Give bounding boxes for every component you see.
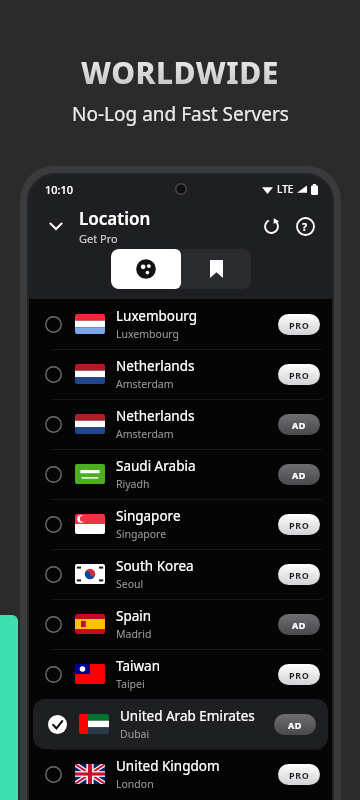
staticText: Get Pro xyxy=(79,231,118,246)
button[interactable]: PRO xyxy=(278,764,320,785)
button[interactable]: AD xyxy=(274,714,316,735)
staticText: Taipei xyxy=(116,677,145,691)
staticText: Singapore xyxy=(116,527,167,541)
button[interactable]: PRO xyxy=(278,364,320,385)
staticText: AD xyxy=(292,619,307,631)
staticText: WORLDWIDE xyxy=(81,52,279,93)
staticText: Taiwan xyxy=(116,657,161,675)
button[interactable]: AD xyxy=(278,464,320,485)
staticText: AD xyxy=(292,469,307,481)
staticText: PRO xyxy=(289,769,310,781)
button[interactable]: Refresh xyxy=(254,209,288,243)
staticText: Location xyxy=(79,207,151,230)
staticText: LTE xyxy=(277,182,294,196)
button[interactable]: PRO xyxy=(278,314,320,335)
button[interactable]: Saudi Arabia xyxy=(29,449,332,499)
button[interactable]: Spain xyxy=(29,599,332,649)
staticText: London xyxy=(116,777,154,791)
staticText: Dubai xyxy=(120,727,150,741)
button[interactable]: PRO xyxy=(278,664,320,685)
staticText: PRO xyxy=(289,319,310,331)
staticText: Spain xyxy=(116,607,152,625)
staticText: PRO xyxy=(289,669,310,681)
button[interactable]: All servers xyxy=(111,249,181,289)
button[interactable]: United Kingdom xyxy=(29,749,332,799)
staticText: PRO xyxy=(289,369,310,381)
staticText: AD xyxy=(292,419,307,431)
button[interactable]: Favourites xyxy=(181,249,251,289)
button[interactable]: PRO xyxy=(278,514,320,535)
button[interactable]: Luxembourg xyxy=(29,299,332,349)
button[interactable]: Netherlands xyxy=(29,399,332,449)
staticText: United Arab Emirates xyxy=(120,707,255,725)
button[interactable]: South Korea xyxy=(29,549,332,599)
staticText: No-Log and Fast Servers xyxy=(72,101,289,127)
button[interactable]: AD xyxy=(278,414,320,435)
button[interactable]: Collapse xyxy=(39,209,73,243)
staticText: Saudi Arabia xyxy=(116,457,196,475)
staticText: Netherlands xyxy=(116,407,195,425)
button[interactable]: PRO xyxy=(278,564,320,585)
button[interactable]: Help xyxy=(288,209,322,243)
staticText: Amsterdam xyxy=(116,377,174,391)
staticText: Singapore xyxy=(116,507,181,525)
staticText: Amsterdam xyxy=(116,427,174,441)
staticText: Netherlands xyxy=(116,357,195,375)
staticText: Luxembourg xyxy=(116,327,180,341)
button[interactable]: Netherlands xyxy=(29,349,332,399)
staticText: PRO xyxy=(289,519,310,531)
staticText: Riyadh xyxy=(116,477,150,491)
staticText: Luxembourg xyxy=(116,307,198,325)
button[interactable]: United Arab Emirates xyxy=(33,699,328,749)
button[interactable]: AD xyxy=(278,614,320,635)
staticText: PRO xyxy=(289,569,310,581)
staticText: Madrid xyxy=(116,627,152,641)
button[interactable]: Taiwan xyxy=(29,649,332,699)
staticText: ? xyxy=(302,219,308,234)
staticText: AD xyxy=(288,719,303,731)
staticText: 10:10 xyxy=(45,182,74,197)
staticText: United Kingdom xyxy=(116,757,220,775)
staticText: Seoul xyxy=(116,577,144,591)
button[interactable]: Singapore xyxy=(29,499,332,549)
staticText: South Korea xyxy=(116,557,194,575)
